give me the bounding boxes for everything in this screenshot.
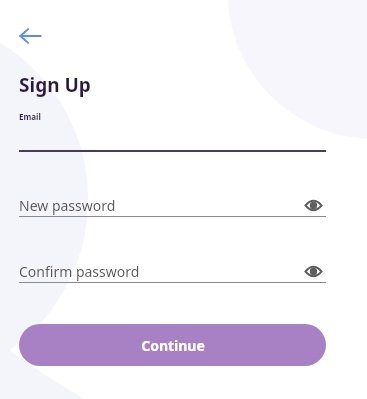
- staticText: Continue: [141, 336, 205, 355]
- button[interactable]: Show password: [300, 260, 326, 282]
- button[interactable]: Back: [8, 14, 52, 58]
- button[interactable]: Confirm password: [19, 262, 300, 281]
- staticText: Sign Up: [19, 72, 91, 98]
- staticText: Email: [19, 111, 41, 122]
- button[interactable]: Show password: [300, 194, 326, 216]
- staticText: Confirm password: [19, 262, 140, 281]
- button[interactable]: Continue: [19, 324, 326, 366]
- staticText: New password: [19, 196, 116, 215]
- button[interactable]: [19, 122, 326, 152]
- button[interactable]: New password: [19, 196, 300, 215]
